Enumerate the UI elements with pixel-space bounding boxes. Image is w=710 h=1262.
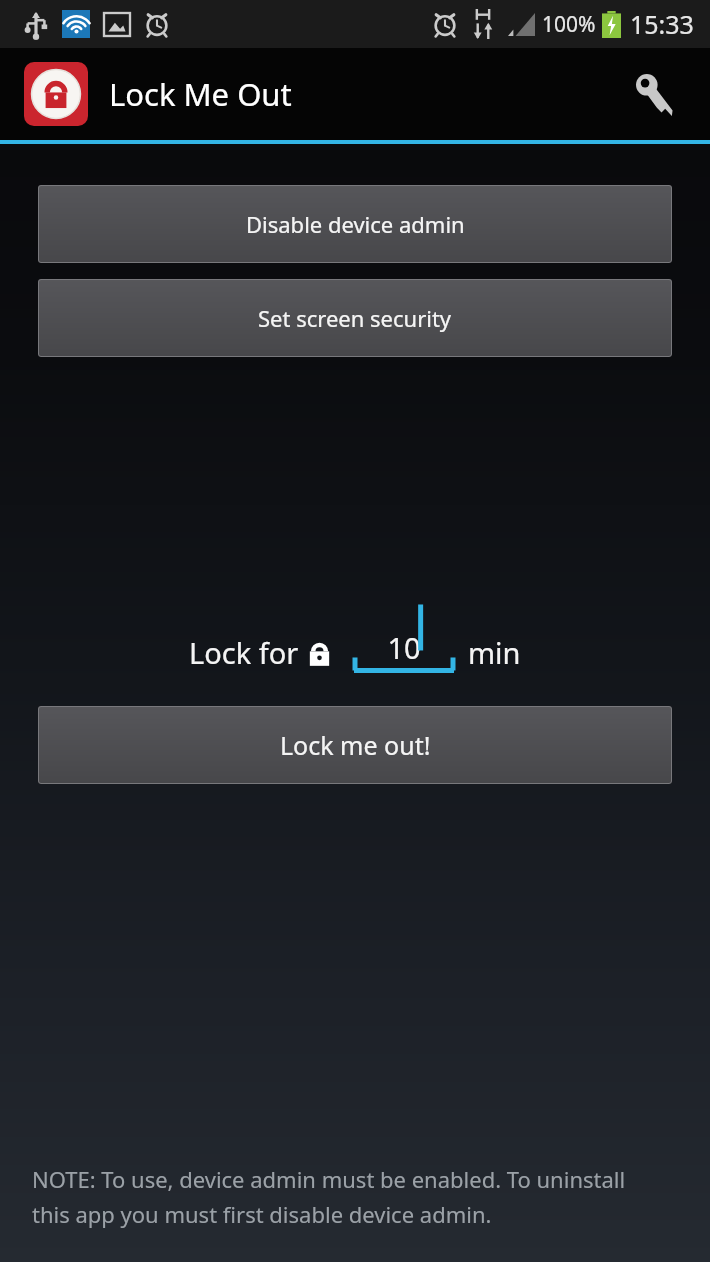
staticText: min bbox=[468, 633, 521, 672]
staticText: 100% bbox=[542, 10, 596, 39]
button[interactable]: Lock me out! bbox=[38, 706, 672, 784]
staticText: 15:33 bbox=[630, 7, 694, 41]
staticText: Set screen security bbox=[258, 303, 452, 333]
staticText: Disable device admin bbox=[246, 209, 465, 239]
button[interactable]: Set password bbox=[620, 58, 692, 130]
staticText: Lock me out! bbox=[280, 728, 431, 762]
staticText: this app you must first disable device a… bbox=[32, 1199, 492, 1229]
staticText: Lock for bbox=[189, 633, 299, 672]
button[interactable]: Set screen security bbox=[38, 279, 672, 357]
staticText: Lock Me Out bbox=[109, 73, 292, 115]
staticText: NOTE: To use, device admin must be enabl… bbox=[32, 1164, 626, 1194]
staticText: 10 bbox=[352, 628, 456, 667]
button[interactable]: Disable device admin bbox=[38, 185, 672, 263]
